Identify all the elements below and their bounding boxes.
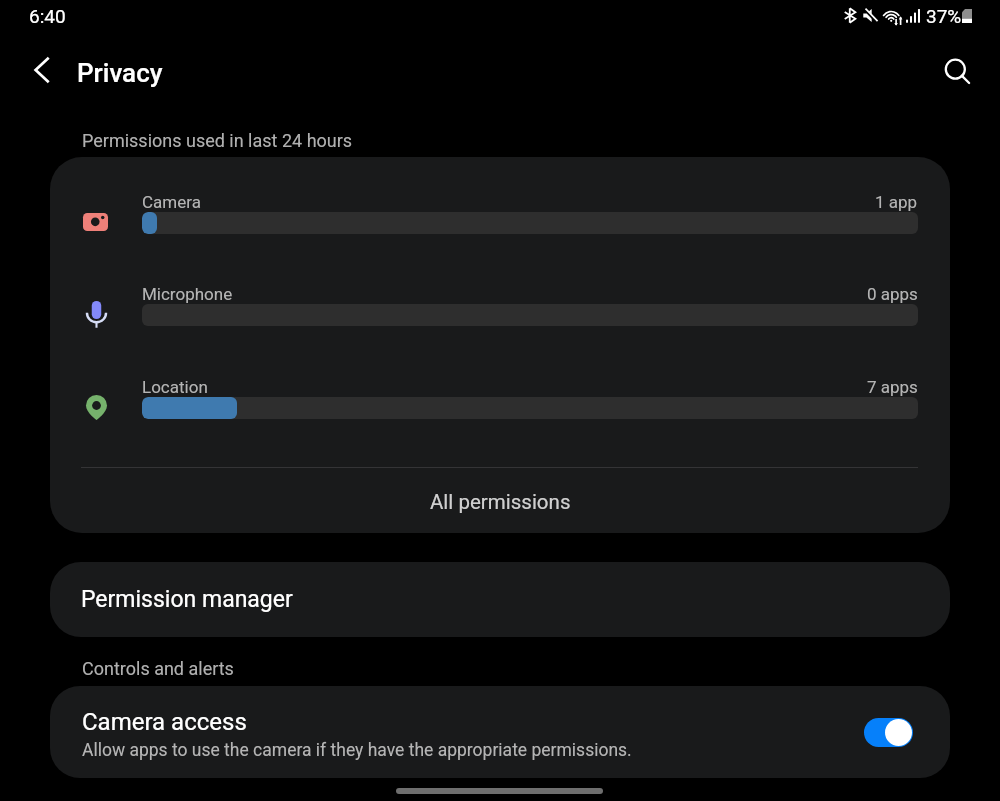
other: Battery 37 percent [962, 9, 972, 23]
button[interactable]: Navigate up [18, 46, 66, 94]
staticText: All permissions [430, 490, 571, 514]
staticText: 1 app [875, 192, 918, 212]
staticText: Privacy [77, 58, 163, 88]
button[interactable]: Camera access [50, 686, 950, 778]
other: Mobile signal [906, 8, 920, 23]
staticText: Permission manager [81, 586, 293, 613]
staticText: Camera access [82, 708, 247, 736]
staticText: Location [142, 377, 208, 397]
staticText: Camera [142, 192, 201, 212]
other: Bluetooth [844, 8, 856, 23]
staticText: 37% [926, 5, 962, 27]
other: Sound off [863, 8, 877, 23]
other: Wi-Fi [883, 8, 903, 24]
staticText: 7 apps [867, 377, 918, 397]
button[interactable]: Permission manager [50, 562, 950, 637]
staticText: Controls and alerts [82, 658, 234, 679]
button[interactable]: Search [933, 48, 981, 96]
other: Camera [83, 213, 108, 231]
other: Microphone [86, 300, 107, 328]
staticText: 0 apps [867, 284, 918, 304]
staticText: Permissions used in last 24 hours [82, 130, 353, 151]
button[interactable]: Camera access, on [864, 718, 913, 747]
staticText: 6:40 [29, 5, 66, 27]
staticText: Allow apps to use the camera if they hav… [82, 740, 632, 761]
staticText: Microphone [142, 284, 233, 304]
button[interactable]: All permissions [50, 471, 950, 533]
other: Location [86, 395, 107, 420]
